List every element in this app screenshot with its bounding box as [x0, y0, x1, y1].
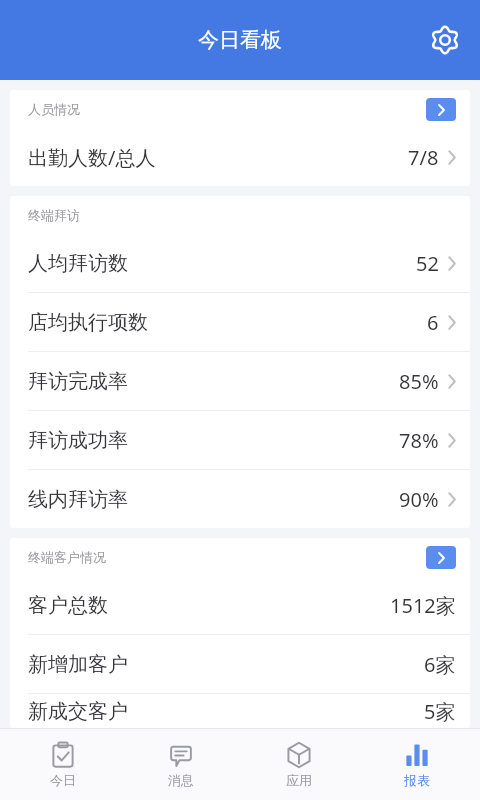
staticText: 应用 [286, 772, 312, 788]
staticText: 消息 [168, 772, 194, 788]
staticText: 客户总数 [28, 593, 108, 618]
button[interactable]: 拜访完成率 [10, 352, 470, 410]
staticText: 新增加客户 [28, 652, 128, 677]
staticText: 报表 [404, 772, 430, 788]
staticText: 拜访完成率 [28, 369, 128, 394]
staticText: 5家 [424, 698, 456, 725]
staticText: 人员情况 [28, 101, 80, 117]
button[interactable]: 店均执行项数 [10, 293, 470, 351]
staticText: 人均拜访数 [28, 251, 128, 276]
staticText: 7/8 [408, 144, 439, 171]
staticText: 店均执行项数 [28, 310, 148, 335]
button[interactable]: 今日 [8, 729, 118, 800]
button[interactable]: 客户总数 [10, 576, 470, 634]
button[interactable]: 新增加客户 [10, 635, 470, 693]
staticText: 85% [399, 368, 439, 395]
button[interactable]: 报表 [362, 729, 472, 800]
staticText: 新成交客户 [28, 699, 128, 724]
staticText: 拜访成功率 [28, 428, 128, 453]
staticText: 线内拜访率 [28, 487, 128, 512]
staticText: 今日看板 [198, 27, 282, 53]
staticText: 终端客户情况 [28, 549, 106, 565]
staticText: 78% [399, 427, 439, 454]
button[interactable]: 应用 [244, 729, 354, 800]
staticText: 52 [416, 250, 439, 277]
button[interactable]: Open 终端客户情况 details [426, 546, 456, 569]
staticText: 6家 [424, 651, 456, 678]
button[interactable]: Settings [420, 15, 470, 65]
button[interactable]: 消息 [126, 729, 236, 800]
button[interactable]: Open 人员情况 details [426, 98, 456, 121]
button[interactable]: 新成交客户 [10, 694, 470, 728]
staticText: 90% [399, 486, 439, 513]
button[interactable]: 出勤人数/总人 [10, 128, 470, 186]
staticText: 出勤人数/总人 [28, 144, 156, 171]
staticText: 6 [427, 309, 439, 336]
button[interactable]: 人均拜访数 [10, 234, 470, 292]
staticText: 终端拜访 [28, 207, 80, 223]
button[interactable]: 拜访成功率 [10, 411, 470, 469]
button[interactable]: 线内拜访率 [10, 470, 470, 528]
staticText: 1512家 [390, 592, 456, 619]
staticText: 今日 [50, 772, 76, 788]
